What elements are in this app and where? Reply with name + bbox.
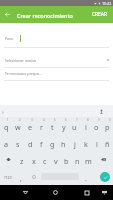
button[interactable]: x xyxy=(28,151,39,168)
button[interactable]: k xyxy=(80,134,91,151)
staticText: x xyxy=(32,156,36,166)
button[interactable]: Hide keyboard xyxy=(98,186,111,199)
button[interactable]: a xyxy=(0,134,12,151)
button[interactable]: , xyxy=(15,168,27,185)
button[interactable]: Back xyxy=(0,6,15,23)
staticText: s xyxy=(16,139,20,149)
button[interactable]: Back xyxy=(19,186,32,199)
button[interactable]: g xyxy=(47,134,58,151)
button[interactable]: 9 xyxy=(91,117,102,134)
staticText: 3 xyxy=(31,118,33,122)
staticText: o xyxy=(94,122,99,132)
button[interactable]: l xyxy=(91,134,102,151)
staticText: › xyxy=(2,108,4,115)
button[interactable]: 8 xyxy=(80,117,91,134)
staticText: 1 xyxy=(7,118,9,122)
staticText: q xyxy=(4,122,9,132)
button[interactable]: 5 xyxy=(47,117,58,134)
button[interactable]: Enter xyxy=(92,168,113,185)
staticText: w xyxy=(15,122,21,132)
button[interactable]: z xyxy=(16,151,28,168)
staticText: z xyxy=(20,156,24,166)
button[interactable]: 4 xyxy=(36,117,47,134)
button[interactable]: d xyxy=(24,134,36,151)
staticText: ñ xyxy=(105,139,110,149)
button[interactable]: Emoji xyxy=(27,168,40,185)
staticText: Para: xyxy=(5,36,14,41)
button[interactable]: 2 xyxy=(12,117,24,134)
button[interactable]: 1 xyxy=(0,117,12,134)
button[interactable]: Space xyxy=(40,168,80,185)
button[interactable]: m xyxy=(83,151,94,168)
button[interactable]: Voice input xyxy=(97,107,105,115)
staticText: Te reconozco porque... xyxy=(5,71,43,76)
button[interactable]: Shift xyxy=(0,151,16,168)
staticText: , xyxy=(20,173,22,183)
staticText: y xyxy=(62,122,66,132)
button[interactable]: 7 xyxy=(69,117,80,134)
button[interactable]: . xyxy=(80,168,92,185)
staticText: 15:42 xyxy=(102,1,112,6)
staticText: h xyxy=(61,139,66,149)
staticText: m xyxy=(85,156,92,166)
button[interactable]: f xyxy=(36,134,47,151)
staticText: 4 xyxy=(43,118,45,122)
staticText: 6 xyxy=(65,118,67,122)
button[interactable]: CREAR xyxy=(88,6,113,23)
staticText: u xyxy=(72,122,77,132)
button[interactable]: h xyxy=(58,134,69,151)
button[interactable]: b xyxy=(61,151,72,168)
button[interactable]: c xyxy=(39,151,50,168)
staticText: a xyxy=(4,139,9,149)
staticText: Crear reconocimiento xyxy=(17,12,73,19)
button[interactable]: 6 xyxy=(58,117,69,134)
button[interactable]: ñ xyxy=(102,134,113,151)
button[interactable]: 3 xyxy=(24,117,36,134)
staticText: v xyxy=(54,156,58,166)
button[interactable]: v xyxy=(50,151,61,168)
button[interactable]: ?123 xyxy=(0,168,15,185)
staticText: b xyxy=(64,156,69,166)
staticText: r xyxy=(40,122,43,132)
staticText: . xyxy=(85,173,87,183)
staticText: 8 xyxy=(87,118,89,122)
staticText: 5 xyxy=(54,118,56,122)
staticText: f xyxy=(40,139,43,149)
staticText: t xyxy=(51,122,54,132)
staticText: i xyxy=(85,122,87,132)
staticText: CREAR xyxy=(92,11,107,18)
staticText: l xyxy=(96,139,98,149)
staticText: Seleccionar motivo xyxy=(5,58,37,63)
staticText: 2 xyxy=(19,118,21,122)
staticText: 0 xyxy=(109,118,111,122)
button[interactable]: Te reconozco porque... xyxy=(0,69,113,78)
button[interactable]: s xyxy=(12,134,24,151)
staticText: g xyxy=(50,139,55,149)
button[interactable]: Backspace xyxy=(94,151,113,168)
button[interactable]: j xyxy=(69,134,80,151)
button[interactable]: Seleccionar motivo xyxy=(0,55,113,65)
staticText: d xyxy=(28,139,33,149)
staticText: k xyxy=(84,139,88,149)
staticText: 9 xyxy=(98,118,100,122)
staticText: j xyxy=(74,139,76,149)
staticText: p xyxy=(105,122,110,132)
button[interactable]: 0 xyxy=(102,117,113,134)
staticText: ?123 xyxy=(4,175,12,180)
staticText: e xyxy=(28,122,33,132)
staticText: c xyxy=(43,156,47,166)
button[interactable]: Home xyxy=(49,186,62,199)
staticText: n xyxy=(75,156,80,166)
button[interactable]: Recent apps xyxy=(80,186,93,199)
staticText: 7 xyxy=(76,118,78,122)
button[interactable]: n xyxy=(72,151,83,168)
